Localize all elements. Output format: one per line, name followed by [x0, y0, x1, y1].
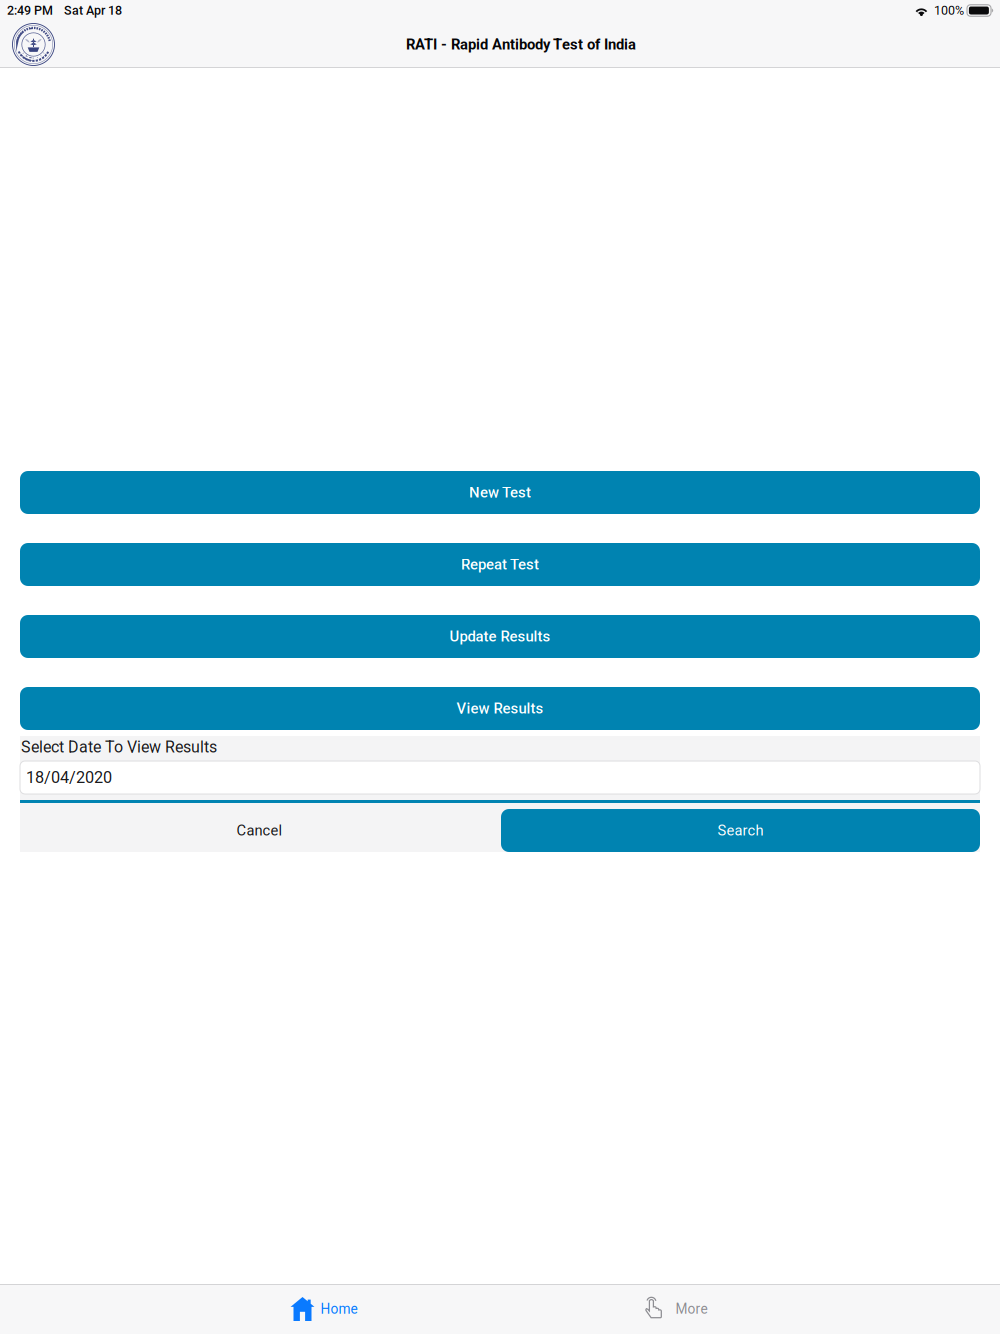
button[interactable]: Update Results: [20, 615, 980, 658]
staticText: Home: [320, 1301, 357, 1317]
staticText: Cancel: [236, 822, 282, 839]
staticText: Sat Apr 18: [64, 3, 122, 18]
staticText: View Results: [456, 700, 543, 717]
staticText: RATI - Rapid Antibody Test of India: [406, 36, 636, 53]
button[interactable]: More: [500, 1284, 852, 1334]
button[interactable]: Repeat Test: [20, 543, 980, 586]
button[interactable]: Search: [501, 809, 980, 852]
button[interactable]: Cancel: [20, 809, 499, 852]
staticText: Repeat Test: [461, 556, 539, 573]
button[interactable]: View Results: [20, 687, 980, 730]
staticText: 2:49 PM: [7, 3, 53, 18]
button[interactable]: New Test: [20, 471, 980, 514]
staticText: 18/04/2020: [26, 768, 112, 787]
button[interactable]: ICMR emblem: [12, 23, 55, 66]
staticText: Update Results: [449, 628, 550, 645]
staticText: New Test: [469, 484, 531, 501]
staticText: Search: [717, 822, 763, 839]
staticText: More: [675, 1301, 707, 1317]
staticText: Select Date To View Results: [21, 738, 217, 756]
staticText: 100%: [934, 3, 964, 18]
button[interactable]: Home: [148, 1284, 500, 1334]
